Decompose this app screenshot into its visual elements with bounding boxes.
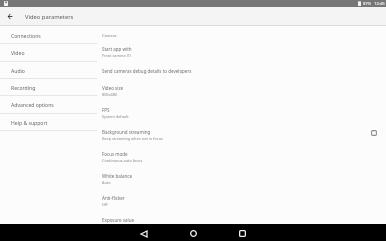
button[interactable]: Connections: [0, 26, 97, 43]
button[interactable]: Home: [184, 224, 202, 241]
button[interactable]: Recent apps: [233, 224, 251, 241]
staticText: Recording: [11, 85, 36, 92]
staticText: Advanced options: [11, 102, 54, 109]
staticText: FPS: [102, 107, 110, 113]
staticText: Video: [11, 50, 25, 57]
staticText: Continuous auto focus: [102, 158, 143, 163]
staticText: Help & support: [11, 120, 48, 127]
staticText: 800x480: [102, 92, 118, 97]
staticText: Start app with: [102, 46, 132, 52]
staticText: Keep streaming when not in focus: [102, 136, 163, 141]
staticText: White balance: [102, 173, 132, 179]
staticText: Connections: [11, 33, 41, 40]
button[interactable]: Start app with: [97, 44, 386, 66]
button[interactable]: White balance: [97, 171, 386, 193]
button[interactable]: Advanced options: [0, 95, 97, 112]
staticText: Auto: [102, 180, 111, 185]
staticText: Send cameras debug details to developers: [102, 68, 192, 74]
staticText: Anti-flicker: [102, 195, 125, 201]
button[interactable]: Focus mode: [97, 149, 386, 171]
button[interactable]: Video: [0, 43, 97, 60]
button[interactable]: Background streaming: [97, 127, 386, 149]
staticText: Focus mode: [102, 151, 128, 157]
staticText: Video size: [102, 85, 124, 91]
button[interactable]: Video size: [97, 83, 386, 105]
button[interactable]: Anti-flicker: [97, 193, 386, 215]
staticText: 12:45: [374, 1, 385, 7]
button[interactable]: Help & support: [0, 113, 97, 130]
staticText: Off: [102, 202, 108, 207]
staticText: System default: [102, 114, 129, 119]
staticText: Camera: [102, 33, 117, 38]
staticText: 87%: [363, 1, 372, 7]
staticText: Exposure value: [102, 217, 135, 223]
button[interactable]: Send cameras debug details to developers: [97, 66, 386, 82]
staticText: Front camera (1): [102, 53, 132, 58]
button[interactable]: Back: [135, 224, 153, 241]
staticText: Video parameters: [25, 13, 74, 21]
button[interactable]: Exposure value: [97, 215, 386, 231]
button[interactable]: Navigate up: [0, 7, 19, 26]
button[interactable]: FPS: [97, 105, 386, 127]
button[interactable]: Recording: [0, 78, 97, 95]
button[interactable]: Audio: [0, 61, 97, 78]
staticText: Audio: [11, 68, 25, 75]
staticText: Background streaming: [102, 129, 151, 135]
